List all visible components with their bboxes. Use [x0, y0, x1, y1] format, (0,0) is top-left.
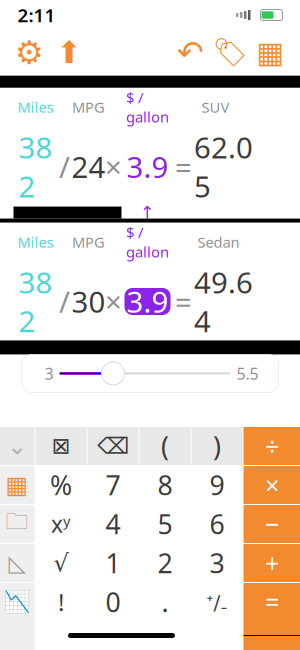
button[interactable]: Calculator	[0, 466, 34, 504]
staticText: =	[265, 585, 279, 619]
staticText: 1	[105, 545, 120, 581]
button[interactable]: ÷	[243, 427, 300, 465]
staticText: /	[59, 282, 70, 321]
staticText: 3.9	[126, 147, 168, 186]
staticText: Miles	[17, 232, 53, 252]
button[interactable]: Tags	[210, 32, 250, 72]
button[interactable]: 8	[139, 466, 190, 504]
staticText: 📉	[3, 590, 30, 614]
button[interactable]: ⊠	[35, 427, 86, 465]
staticText: +	[265, 546, 279, 580]
staticText: ⬆	[56, 35, 82, 70]
staticText: ⌄	[7, 432, 27, 460]
staticText: 2	[157, 545, 172, 581]
staticText: 0	[105, 584, 120, 620]
button[interactable]: ×	[243, 466, 300, 504]
staticText: )	[213, 428, 221, 464]
button[interactable]: 3.9	[124, 288, 170, 315]
staticText: =	[175, 282, 192, 321]
staticText: 382	[18, 128, 52, 206]
staticText: $ / gallon	[126, 223, 169, 262]
staticText: 5.5	[236, 363, 258, 384]
staticText: 62.05	[194, 128, 253, 206]
staticText: 7	[105, 467, 120, 503]
staticText: ×	[105, 282, 122, 321]
button[interactable]: )	[191, 427, 242, 465]
button[interactable]: Settings	[9, 32, 49, 72]
staticText: ▦	[256, 36, 284, 69]
staticText: ↶	[177, 34, 204, 71]
staticText: √	[53, 549, 68, 577]
button[interactable]: 3	[191, 544, 242, 582]
staticText: 24	[71, 147, 105, 186]
staticText: ▦	[5, 471, 28, 499]
button[interactable]: Files	[0, 505, 34, 543]
staticText: 49.64	[194, 262, 253, 340]
staticText: 6	[209, 506, 224, 542]
staticText: 382	[18, 262, 52, 340]
staticText: /	[59, 147, 70, 186]
button[interactable]: +	[243, 544, 300, 582]
button[interactable]: Calculator	[250, 32, 290, 72]
button[interactable]: Share	[49, 32, 89, 72]
staticText: ↑	[140, 203, 155, 222]
staticText: 3	[44, 363, 53, 384]
button[interactable]: 6	[191, 505, 242, 543]
staticText: MPG	[72, 97, 105, 117]
button[interactable]: .	[139, 583, 190, 621]
staticText: 9	[209, 467, 224, 503]
button[interactable]: 2	[139, 544, 190, 582]
button[interactable]: Undo	[170, 32, 210, 72]
staticText: 8	[157, 467, 172, 503]
staticText: SUV	[201, 97, 229, 117]
button[interactable]: ⌫	[87, 427, 138, 465]
staticText: 30	[71, 282, 105, 321]
button[interactable]: Geometry	[0, 544, 34, 582]
button[interactable]: 5	[139, 505, 190, 543]
staticText: %	[50, 467, 72, 503]
staticText: =	[175, 147, 192, 186]
button[interactable]: !	[35, 583, 86, 621]
staticText: 🗀	[5, 505, 28, 543]
button[interactable]: 1	[87, 544, 138, 582]
staticText: ×	[105, 147, 122, 186]
staticText: 2:11	[17, 3, 55, 27]
staticText: ×	[265, 468, 279, 502]
staticText: ◺	[8, 550, 25, 576]
staticText: 4	[105, 506, 120, 542]
staticText: −	[265, 507, 279, 541]
button[interactable]: √	[35, 544, 86, 582]
staticText: !	[58, 586, 64, 618]
staticText: (	[161, 428, 169, 464]
staticText: ⊠	[51, 433, 70, 459]
button[interactable]: 9	[191, 466, 242, 504]
button[interactable]: −	[243, 505, 300, 543]
staticText: ÷	[265, 429, 279, 463]
button[interactable]: %	[35, 466, 86, 504]
staticText: .	[161, 584, 168, 620]
button[interactable]: 7	[87, 466, 138, 504]
staticText: ⚙	[15, 34, 44, 71]
staticText: $ / gallon	[126, 88, 169, 127]
button[interactable]: Graph	[0, 583, 34, 621]
button[interactable]: 4	[87, 505, 138, 543]
staticText: MPG	[72, 232, 105, 252]
button[interactable]: Hide keyboard	[0, 427, 34, 465]
button[interactable]: =	[243, 583, 300, 621]
staticText: Sedan	[197, 232, 239, 252]
button[interactable]: ⁺∕₋	[191, 583, 242, 621]
staticText: Miles	[17, 97, 53, 117]
staticText: xʸ	[51, 509, 71, 539]
staticText: 5	[157, 506, 172, 542]
button[interactable]: (	[139, 427, 190, 465]
button[interactable]: 0	[87, 583, 138, 621]
staticText: 3	[209, 545, 224, 581]
staticText: 🏷	[212, 36, 248, 68]
staticText: 3.9	[126, 282, 168, 321]
staticText: ⌫	[97, 433, 129, 459]
staticText: ⁺∕₋	[206, 589, 227, 615]
button[interactable]: xʸ	[35, 505, 86, 543]
